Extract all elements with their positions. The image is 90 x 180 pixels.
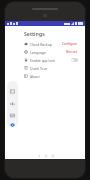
staticText: Cloud Backup [30, 42, 52, 47]
button[interactable]: Back [35, 153, 42, 159]
button[interactable]: Recent apps [49, 153, 56, 159]
button[interactable]: Enable app lock toggle [71, 58, 78, 62]
button[interactable]: Enable app lock [23, 56, 81, 64]
button[interactable]: Reports [8, 99, 17, 108]
staticText: Configure [62, 42, 78, 46]
staticText: Language [30, 50, 46, 55]
button[interactable]: Quick Tour [23, 64, 81, 72]
staticText: Not set [66, 50, 78, 54]
staticText: Settings [24, 30, 45, 37]
button[interactable]: Archive [8, 111, 17, 120]
button[interactable]: Cloud Backup [23, 40, 81, 48]
button[interactable]: Dashboard [8, 87, 17, 96]
staticText: About [30, 74, 40, 79]
staticText: Enable app lock [30, 58, 55, 63]
button[interactable]: Home [42, 153, 49, 159]
staticText: Quick Tour [30, 66, 48, 71]
button[interactable]: Settings [8, 123, 17, 127]
button[interactable]: About [23, 72, 81, 80]
button[interactable]: Language [23, 48, 81, 56]
